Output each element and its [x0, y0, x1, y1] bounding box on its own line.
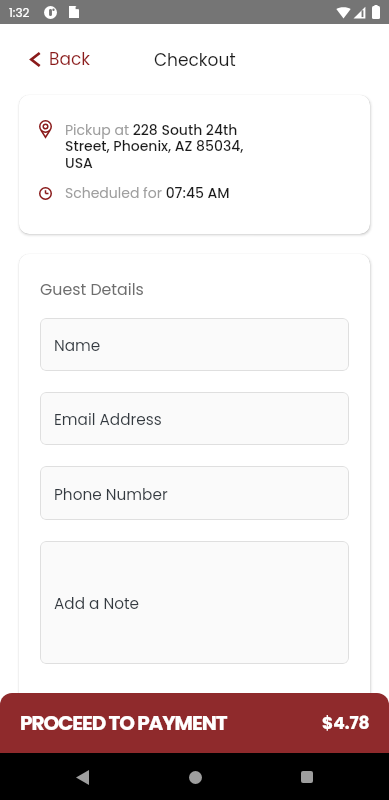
staticText: 1:32: [9, 4, 30, 21]
staticText: Name: [54, 335, 101, 356]
staticText: Guest Details: [40, 278, 144, 300]
button[interactable]: Back: [62, 757, 102, 797]
staticText: Back: [49, 47, 90, 71]
staticText: Scheduled for 07:45 AM: [65, 183, 230, 203]
button[interactable]: Phone Number: [40, 466, 349, 520]
button[interactable]: Home: [175, 757, 215, 797]
button[interactable]: Email Address: [40, 392, 349, 445]
button[interactable]: PROCEED TO PAYMENT: [0, 693, 389, 753]
staticText: Checkout: [154, 48, 236, 72]
button[interactable]: Name: [40, 318, 349, 371]
button[interactable]: Back: [24, 40, 96, 80]
button[interactable]: Pickup at 228 South 24th Street, Phoenix…: [19, 95, 370, 234]
button[interactable]: Recent apps: [287, 757, 327, 797]
staticText: Phone Number: [54, 484, 168, 505]
button[interactable]: Add a Note: [40, 541, 349, 664]
staticText: PROCEED TO PAYMENT: [20, 709, 227, 737]
staticText: Add a Note: [54, 593, 140, 614]
staticText: Pickup at 228 South 24th Street, Phoenix…: [65, 120, 257, 173]
staticText: Email Address: [54, 409, 162, 430]
staticText: $4.78: [322, 711, 370, 735]
